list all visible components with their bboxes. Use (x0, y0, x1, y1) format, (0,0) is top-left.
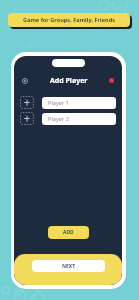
button[interactable]: Choose avatar (20, 112, 34, 125)
staticText: Player 2 (48, 115, 69, 123)
button[interactable]: Alerts (109, 78, 114, 83)
button[interactable]: How to play (19, 75, 31, 87)
staticText: Game for Groups, Family, Friends (23, 16, 116, 24)
button[interactable]: Player 2 (42, 113, 116, 125)
staticText: Player 1 (48, 99, 69, 107)
staticText: NEXT (62, 263, 76, 270)
button[interactable]: ADD (48, 226, 89, 239)
button[interactable]: NEXT (32, 260, 105, 272)
button[interactable]: Choose avatar (20, 96, 34, 109)
button[interactable]: Player 1 (42, 97, 116, 109)
staticText: ADD (63, 229, 74, 236)
button[interactable]: Game for Groups, Family, Friends (8, 13, 130, 27)
staticText: Add Player (50, 76, 88, 86)
